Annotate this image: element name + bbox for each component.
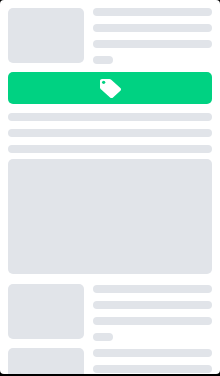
button[interactable]: Offers [8,72,212,104]
button[interactable]: Article 2 [8,284,212,341]
button[interactable]: Article 3 [8,348,212,374]
button[interactable]: Article 1 [8,8,212,64]
